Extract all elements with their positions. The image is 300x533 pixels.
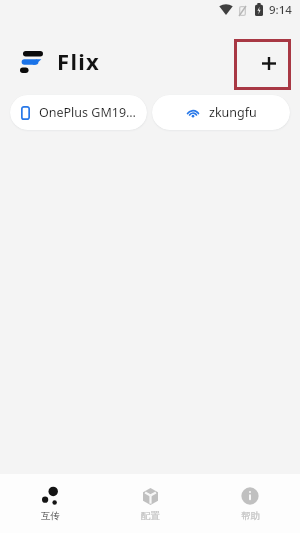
staticText: zkungfu [209,104,257,121]
button[interactable]: 帮助 [200,474,300,533]
staticText: 帮助 [241,510,260,522]
button[interactable]: 互传 [0,474,100,533]
staticText: 配置 [141,510,160,522]
staticText: Flix [57,46,101,76]
staticText: OnePlus GM19… [39,104,136,121]
staticText: 互传 [41,510,60,522]
staticText: 9:14 [269,2,292,18]
button[interactable]: OnePlus GM19… [10,95,147,130]
button[interactable]: zkungfu [152,95,290,130]
button[interactable]: 配置 [100,474,200,533]
button[interactable]: Add device [242,37,292,87]
